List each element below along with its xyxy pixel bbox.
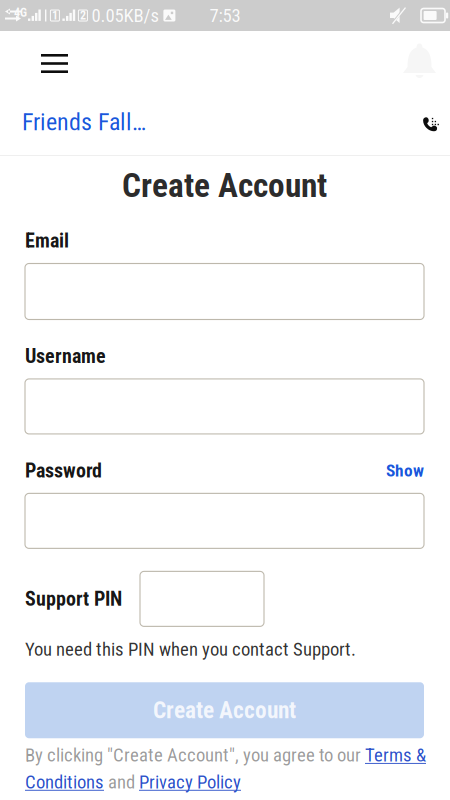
staticText: Email bbox=[25, 229, 69, 252]
staticText: Friends Fall… bbox=[22, 108, 146, 136]
staticText: 4G bbox=[14, 5, 27, 20]
staticText: Password bbox=[25, 459, 102, 482]
staticText: Conditions bbox=[25, 771, 104, 793]
staticText: You need this PIN when you contact Suppo… bbox=[25, 638, 356, 660]
staticText: and bbox=[104, 771, 139, 793]
staticText: 0.05KB/s bbox=[91, 5, 159, 26]
staticText: Create Account bbox=[153, 697, 296, 724]
button[interactable]: Privacy Policy bbox=[139, 771, 241, 793]
staticText: Privacy Policy bbox=[139, 771, 241, 793]
staticText: Show bbox=[386, 460, 424, 481]
button[interactable]: Conditions bbox=[25, 771, 104, 793]
staticText: 2 bbox=[80, 8, 86, 23]
staticText: Support PIN bbox=[25, 587, 122, 611]
button[interactable]: Friends Fall… bbox=[0, 96, 146, 142]
button[interactable]: Dial pad bbox=[423, 100, 450, 138]
staticText: Terms & bbox=[365, 744, 426, 766]
staticText: 1 bbox=[52, 8, 58, 23]
button[interactable]: Show bbox=[386, 460, 424, 481]
staticText: 7:53 bbox=[209, 5, 240, 26]
button[interactable]: Notifications bbox=[403, 31, 450, 82]
staticText: Username bbox=[25, 344, 106, 368]
button[interactable]: Terms & bbox=[365, 744, 426, 766]
staticText: Create Account bbox=[122, 166, 327, 205]
button[interactable]: Menu bbox=[0, 31, 84, 83]
staticText: By clicking "Create Account", you agree … bbox=[25, 744, 365, 766]
button[interactable]: Create Account bbox=[25, 682, 424, 738]
